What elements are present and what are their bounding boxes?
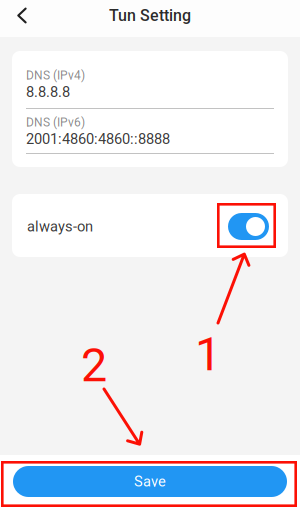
staticText: Tun Setting	[109, 6, 191, 25]
button[interactable]: always-on	[12, 194, 288, 257]
button[interactable]: Save	[0, 455, 300, 511]
staticText: 2001:4860:4860::8888	[26, 130, 170, 148]
staticText: 1	[195, 327, 221, 382]
staticText: always-on	[27, 218, 93, 235]
staticText: 8.8.8.8	[26, 83, 70, 101]
staticText: DNS (IPv4)	[26, 68, 85, 83]
staticText: Save	[134, 473, 166, 490]
staticText: 2	[81, 338, 107, 393]
button[interactable]: Back	[0, 0, 40, 31]
staticText: DNS (IPv6)	[26, 115, 85, 130]
